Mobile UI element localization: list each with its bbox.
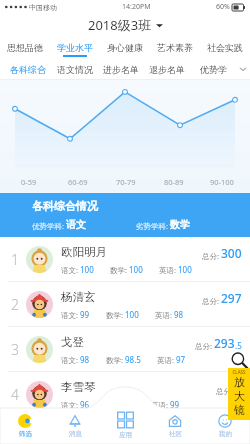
button[interactable]: 退步名单 <box>144 58 190 80</box>
staticText: 97 <box>176 354 186 365</box>
staticText: 总分: <box>202 251 221 261</box>
staticText: 3 <box>11 340 19 359</box>
staticText: 2018级3班 <box>88 16 152 34</box>
button[interactable]: 艺术素养 <box>150 36 200 58</box>
staticText: 英语: <box>159 265 178 275</box>
staticText: 100 <box>80 264 94 275</box>
staticText: 14:20PM <box>122 2 151 12</box>
staticText: 欧阳明月 <box>61 245 107 259</box>
staticText: 英语: <box>157 355 176 365</box>
staticText: 100 <box>125 309 139 320</box>
staticText: 60-69 <box>68 177 88 187</box>
staticText: 300 <box>221 245 242 261</box>
staticText: 退步名单 <box>149 64 185 75</box>
button[interactable]: 各科综合情况 <box>0 193 250 237</box>
button[interactable]: 消息 <box>50 408 100 444</box>
staticText: 语文: <box>61 310 80 320</box>
staticText: 英语: <box>151 400 170 410</box>
staticText: 语文 <box>66 218 86 231</box>
staticText: 艺术素养 <box>157 42 193 53</box>
staticText: 293 <box>214 335 235 351</box>
staticText: 大 <box>234 389 245 403</box>
staticText: 数学: <box>110 265 129 275</box>
button[interactable]: 筛选 <box>0 408 50 444</box>
staticText: 消息 <box>69 430 82 438</box>
staticText: 镜 <box>234 403 245 417</box>
staticText: 80-89 <box>164 177 184 187</box>
staticText: 96 <box>80 399 90 410</box>
staticText: 优势学 <box>200 64 227 75</box>
staticText: 1 <box>11 250 19 269</box>
staticText: 进步名单 <box>103 64 139 75</box>
staticText: 筛选 <box>19 430 32 438</box>
button[interactable]: 社会实践 <box>200 36 250 58</box>
staticText: 98 <box>80 354 90 365</box>
staticText: 身心健康 <box>107 42 143 53</box>
staticText: 90-100 <box>210 177 234 187</box>
staticText: 语文: <box>61 355 80 365</box>
button[interactable]: 身心健康 <box>100 36 150 58</box>
staticText: 数学: <box>106 355 125 365</box>
staticText: 100 <box>178 264 192 275</box>
staticText: 各科综合情况 <box>32 199 98 213</box>
staticText: 数学: <box>106 310 125 320</box>
staticText: .5 <box>235 340 242 351</box>
staticText: 各科综合 <box>10 64 46 75</box>
button[interactable]: 应用 <box>100 408 150 444</box>
staticText: 总分: <box>195 341 214 351</box>
staticText: 社会实践 <box>207 42 243 53</box>
staticText: 2 <box>235 380 242 396</box>
staticText: 语文情况 <box>57 64 93 75</box>
staticText: CLASS <box>232 369 246 375</box>
staticText: 总分: <box>202 296 221 306</box>
button[interactable]: 我的 <box>200 408 250 444</box>
button[interactable]: 优势学 <box>190 58 236 80</box>
button[interactable]: 1 <box>0 237 250 282</box>
button[interactable]: Class magnifier <box>228 368 250 420</box>
staticText: 劣势学科: <box>136 221 170 231</box>
staticText: 4 <box>11 385 19 404</box>
staticText: 戈登 <box>61 335 84 349</box>
staticText: 优势学科: <box>32 221 66 231</box>
staticText: 语文: <box>61 265 80 275</box>
staticText: 99 <box>80 309 90 320</box>
staticText: 思想品德 <box>7 42 43 53</box>
button[interactable]: 3 <box>0 327 250 372</box>
staticText: 98.5 <box>125 354 141 365</box>
staticText: 数学 <box>170 218 190 231</box>
staticText: 100 <box>129 264 143 275</box>
button[interactable]: 各科综合 <box>4 58 51 80</box>
staticText: 99 <box>170 399 180 410</box>
button[interactable]: 思想品德 <box>0 36 50 58</box>
staticText: 中国移动 <box>29 3 57 12</box>
staticText: 放 <box>234 375 245 389</box>
staticText: 杨清玄 <box>61 290 96 304</box>
staticText: 0-59 <box>21 177 37 187</box>
button[interactable]: 2 <box>0 282 250 327</box>
staticText: 社区 <box>169 430 182 438</box>
staticText: 语文: <box>61 400 80 410</box>
staticText: 学业水平 <box>57 42 93 53</box>
button[interactable]: 4 <box>0 372 250 417</box>
staticText: 我的 <box>219 430 232 438</box>
button[interactable]: 语文情况 <box>51 58 98 80</box>
staticText: 98 <box>174 309 184 320</box>
staticText: 2 <box>11 295 19 314</box>
button[interactable]: 社区 <box>150 408 200 444</box>
button[interactable]: 进步名单 <box>98 58 144 80</box>
button[interactable]: 学业水平 <box>50 36 100 58</box>
staticText: 总分: <box>216 386 235 396</box>
staticText: 297 <box>221 290 242 306</box>
staticText: 英语: <box>155 310 174 320</box>
staticText: 70-79 <box>116 177 136 187</box>
button[interactable]: Expand tabs <box>236 62 250 76</box>
staticText: 应用 <box>119 431 132 439</box>
staticText: 李雪琴 <box>61 380 96 394</box>
staticText: 60% <box>216 2 230 12</box>
button[interactable]: 2018级3班 <box>0 14 250 36</box>
